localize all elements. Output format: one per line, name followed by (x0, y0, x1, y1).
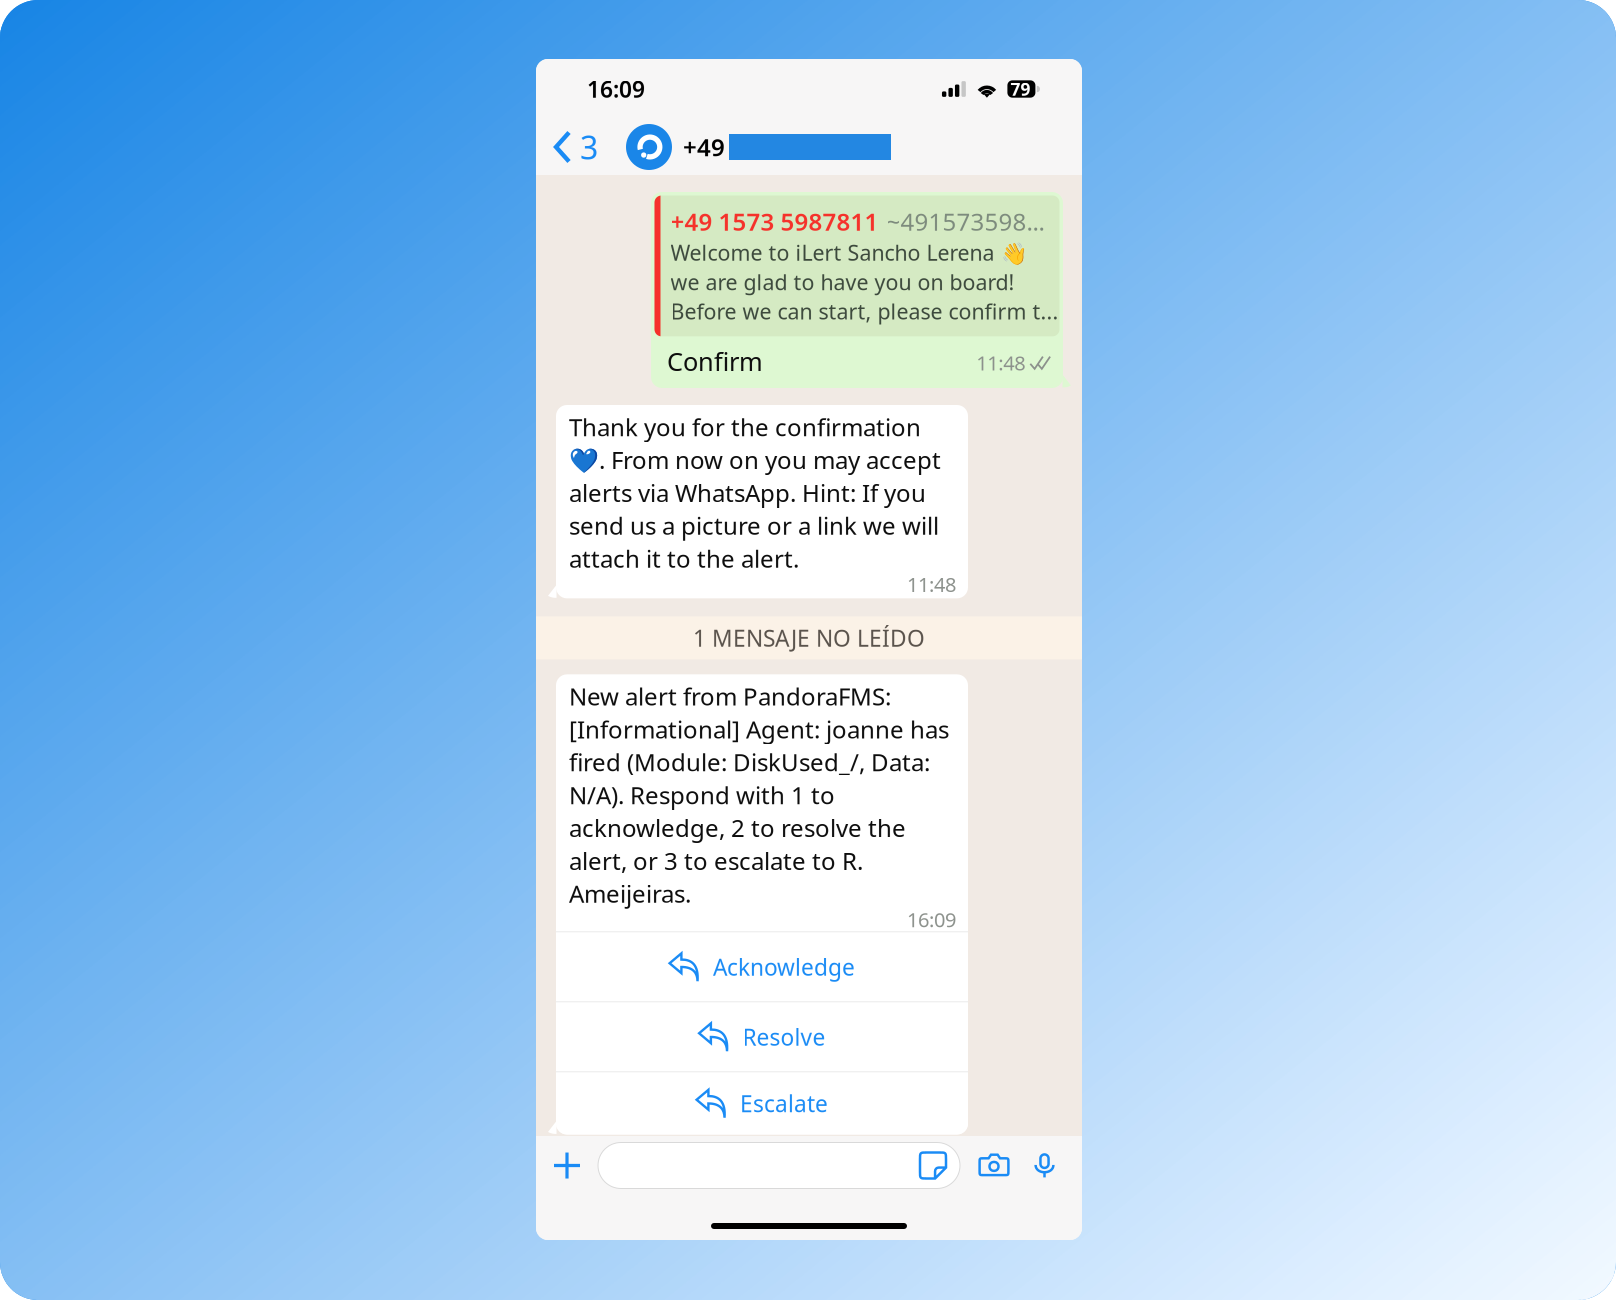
staticText: +49 1573 5987811 (670, 205, 878, 237)
staticText: 1 MENSAJE NO LEÍDO (693, 623, 925, 653)
button[interactable]: Resolve (556, 1002, 968, 1071)
staticText: Resolve (742, 1022, 825, 1052)
staticText: +49 (683, 131, 725, 163)
staticText: 11:48 (907, 571, 956, 598)
staticText: 16:09 (907, 906, 956, 933)
staticText: we are glad to have you on board! (670, 268, 1014, 296)
staticText: 11:48 (976, 349, 1025, 376)
button[interactable]: Escalate (556, 1072, 968, 1134)
staticText: New alert from PandoraFMS: [Informationa… (569, 680, 949, 909)
staticText: Thank you for the confirmation 💙. From n… (569, 411, 941, 574)
staticText: ~491573598... (886, 205, 1044, 237)
button[interactable]: Attach (536, 1143, 581, 1187)
button[interactable]: Voice message (1025, 1146, 1064, 1185)
staticText: 79 (1010, 77, 1030, 100)
staticText: Before we can start, please confirm t... (670, 297, 1058, 325)
staticText: Welcome to iLert Sancho Lerena 👋 (670, 238, 1027, 267)
button[interactable]: Acknowledge (556, 932, 968, 1001)
staticText: Escalate (740, 1088, 828, 1118)
staticText: 16:09 (587, 74, 645, 104)
button[interactable]: Camera (973, 1144, 1015, 1186)
staticText: Acknowledge (713, 952, 855, 982)
staticText: Confirm (667, 344, 763, 378)
button[interactable]: +49 (626, 124, 891, 170)
staticText: 3 (580, 126, 598, 168)
button[interactable]: 3 (536, 118, 608, 176)
button[interactable]: Stickers (920, 1146, 960, 1184)
